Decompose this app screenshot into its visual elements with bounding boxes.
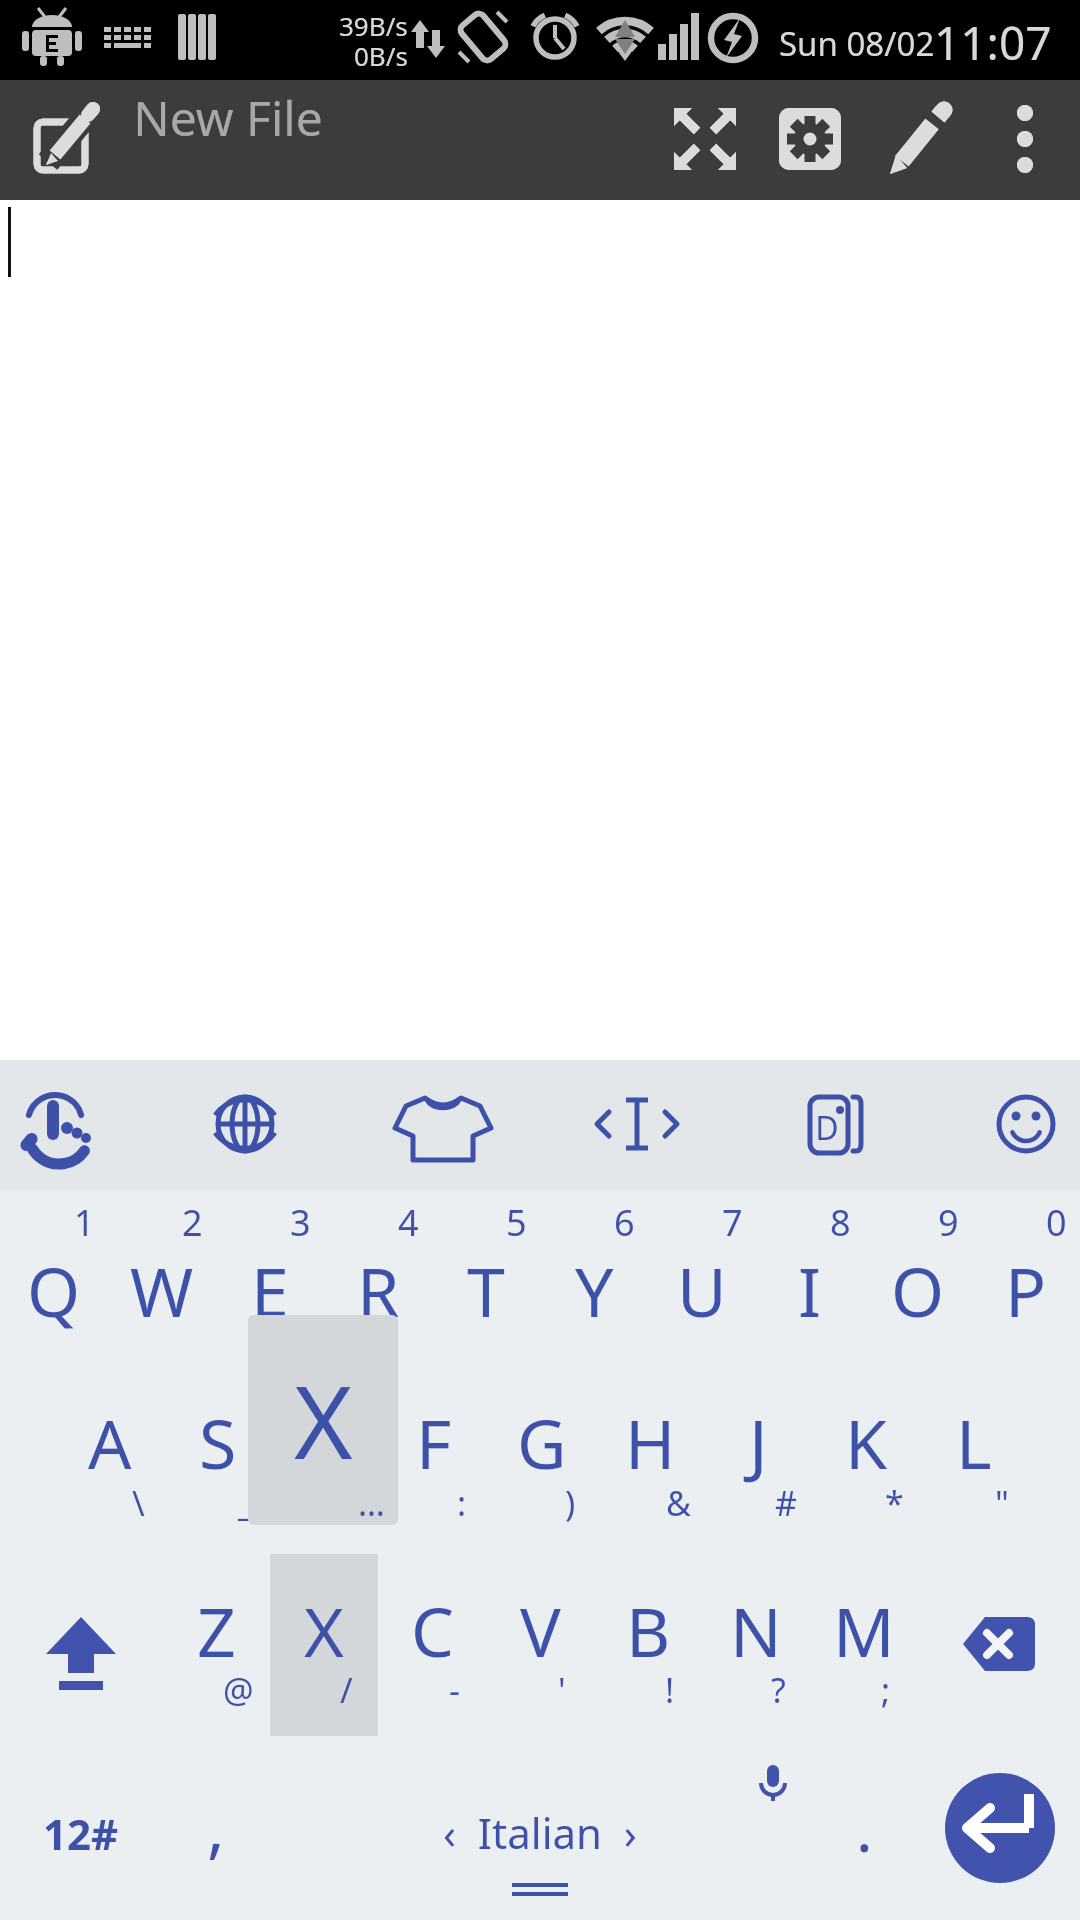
staticText: ‹ Italian › xyxy=(443,1804,637,1861)
staticText: Sun 08/02 xyxy=(779,21,935,66)
button[interactable] xyxy=(378,1060,508,1190)
staticText: T xyxy=(467,1244,505,1337)
button[interactable]: , xyxy=(162,1736,270,1920)
staticText: 7 xyxy=(722,1198,743,1247)
button[interactable]: H xyxy=(596,1372,704,1554)
button[interactable]: T xyxy=(432,1190,540,1372)
button[interactable]: . xyxy=(810,1736,918,1920)
staticText: 8 xyxy=(830,1198,851,1247)
button[interactable] xyxy=(660,94,750,184)
staticText: A xyxy=(88,1396,132,1489)
staticText: G xyxy=(517,1396,567,1489)
staticText: 5 xyxy=(506,1198,527,1247)
staticText: 0 xyxy=(1046,1198,1067,1247)
staticText: W xyxy=(130,1244,194,1337)
staticText: " xyxy=(995,1480,1009,1526)
button[interactable] xyxy=(765,94,855,184)
staticText: I xyxy=(798,1244,822,1337)
staticText: @ xyxy=(223,1667,254,1713)
staticText: … xyxy=(358,1480,385,1526)
button[interactable] xyxy=(0,1060,120,1190)
button[interactable]: R xyxy=(324,1190,432,1372)
button[interactable]: 12# xyxy=(0,1736,162,1920)
staticText: X xyxy=(294,1352,353,1488)
button[interactable]: B xyxy=(594,1554,702,1736)
staticText: C xyxy=(411,1584,454,1677)
staticText: Z xyxy=(197,1584,236,1677)
staticText: O xyxy=(891,1244,945,1337)
staticText: H xyxy=(625,1396,676,1489)
staticText: 12# xyxy=(43,1805,119,1862)
button[interactable]: Q xyxy=(0,1190,108,1372)
button[interactable] xyxy=(918,1554,1080,1736)
button[interactable] xyxy=(980,94,1070,184)
button[interactable]: A xyxy=(56,1372,164,1554)
staticText: Y xyxy=(575,1244,614,1337)
button[interactable] xyxy=(961,1060,1080,1190)
button[interactable]: J xyxy=(704,1372,812,1554)
button[interactable] xyxy=(0,1554,162,1736)
button[interactable]: M xyxy=(810,1554,918,1736)
staticText: * xyxy=(885,1480,904,1526)
button[interactable] xyxy=(20,95,110,185)
staticText: ? xyxy=(771,1667,786,1713)
button[interactable]: Z xyxy=(162,1554,270,1736)
staticText: / xyxy=(340,1667,353,1713)
staticText: E xyxy=(251,1244,289,1337)
staticText: # xyxy=(775,1480,797,1526)
staticText: , xyxy=(207,1781,225,1871)
staticText: D xyxy=(301,1396,351,1489)
button[interactable]: C xyxy=(378,1554,486,1736)
button[interactable]: O xyxy=(864,1190,972,1372)
staticText: P xyxy=(1005,1244,1047,1337)
button[interactable] xyxy=(770,1060,900,1190)
button[interactable]: V xyxy=(486,1554,594,1736)
button[interactable]: E xyxy=(216,1190,324,1372)
staticText: ! xyxy=(665,1667,675,1713)
button[interactable] xyxy=(872,94,962,184)
button[interactable]: X xyxy=(270,1554,378,1736)
button[interactable] xyxy=(572,1060,702,1190)
button[interactable]: L xyxy=(920,1372,1028,1554)
button[interactable]: ‹ Italian › xyxy=(270,1736,810,1920)
button[interactable]: W xyxy=(108,1190,216,1372)
button[interactable]: P xyxy=(972,1190,1080,1372)
staticText: New File xyxy=(133,85,323,150)
button[interactable]: F xyxy=(380,1372,488,1554)
staticText: Q xyxy=(27,1244,81,1337)
staticText: … xyxy=(341,1480,368,1526)
staticText: 2 xyxy=(182,1198,203,1247)
button[interactable]: S xyxy=(164,1372,272,1554)
staticText: B xyxy=(626,1584,671,1677)
staticText: X xyxy=(304,1584,344,1677)
staticText: & xyxy=(666,1480,691,1526)
button[interactable]: D xyxy=(272,1372,380,1554)
staticText: 3 xyxy=(290,1198,311,1247)
staticText: J xyxy=(749,1396,768,1489)
button[interactable]: G xyxy=(488,1372,596,1554)
staticText: 1 xyxy=(74,1198,95,1247)
staticText: M xyxy=(833,1584,895,1677)
button[interactable]: I xyxy=(756,1190,864,1372)
button[interactable] xyxy=(918,1736,1080,1920)
staticText: S xyxy=(199,1396,237,1489)
staticText: \ xyxy=(132,1480,145,1526)
staticText: _ xyxy=(238,1480,254,1526)
staticText: 6 xyxy=(614,1198,635,1247)
staticText: K xyxy=(845,1396,888,1489)
staticText: 9 xyxy=(938,1198,959,1247)
button[interactable]: Y xyxy=(540,1190,648,1372)
staticText: 0B/s xyxy=(354,38,408,73)
staticText: 4 xyxy=(398,1198,419,1247)
staticText: N xyxy=(730,1584,782,1677)
staticText: 11:07 xyxy=(934,11,1052,71)
button[interactable]: N xyxy=(702,1554,810,1736)
staticText: F xyxy=(416,1396,452,1489)
button[interactable] xyxy=(180,1060,310,1190)
staticText: ' xyxy=(558,1667,566,1713)
staticText: . xyxy=(856,1786,873,1870)
staticText: ) xyxy=(565,1480,576,1526)
button[interactable]: K xyxy=(812,1372,920,1554)
button[interactable]: U xyxy=(648,1190,756,1372)
staticText: ; xyxy=(881,1667,891,1713)
